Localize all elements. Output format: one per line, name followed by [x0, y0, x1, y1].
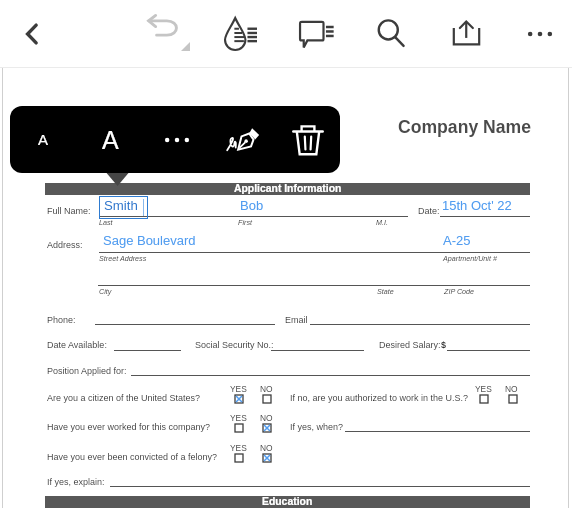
staticText: Street Address: [99, 254, 147, 262]
staticText: Apartment/Unit #: [443, 254, 497, 262]
button[interactable]: [235, 395, 243, 403]
button[interactable]: Share: [438, 0, 494, 68]
button[interactable]: [263, 454, 271, 462]
staticText: YES: [475, 384, 492, 393]
staticText: Desired Salary:: [379, 340, 441, 350]
button[interactable]: Delete: [275, 106, 340, 173]
staticText: Smith: [104, 198, 138, 213]
button[interactable]: [235, 454, 243, 462]
staticText: Have you ever worked for this company?: [47, 422, 211, 432]
staticText: $: [441, 340, 447, 350]
button[interactable]: A: [77, 106, 144, 173]
button[interactable]: Comment: [288, 0, 344, 68]
button[interactable]: Highlight: [213, 0, 269, 68]
button[interactable]: [509, 395, 517, 403]
staticText: Date:: [418, 206, 440, 216]
staticText: Education: [262, 496, 313, 508]
staticText: Company Name: [398, 117, 531, 137]
staticText: Position Applied for:: [47, 366, 127, 376]
staticText: Are you a citizen of the United States?: [47, 393, 201, 403]
staticText: Email: [285, 315, 308, 325]
button[interactable]: More options: [512, 0, 568, 68]
staticText: First: [238, 218, 252, 226]
staticText: Have you ever been convicted of a felony…: [47, 452, 218, 462]
staticText: NO: [505, 384, 518, 393]
staticText: YES: [230, 413, 247, 422]
staticText: M.I.: [376, 218, 388, 226]
staticText: Date Available:: [47, 340, 107, 350]
button[interactable]: [263, 424, 271, 432]
button[interactable]: [235, 424, 243, 432]
staticText: City: [99, 287, 112, 295]
staticText: 15th Oct' 22: [442, 198, 512, 213]
staticText: State: [377, 287, 394, 295]
staticText: If no, are you authorized to work in the…: [290, 393, 469, 403]
staticText: Address:: [47, 240, 83, 250]
button[interactable]: [99, 196, 148, 219]
staticText: Full Name:: [47, 206, 91, 216]
staticText: Last: [99, 218, 113, 226]
staticText: Bob: [240, 198, 264, 213]
button[interactable]: Undo: [141, 0, 197, 68]
staticText: If yes, when?: [290, 422, 344, 432]
button[interactable]: [480, 395, 488, 403]
button[interactable]: More: [144, 106, 210, 173]
staticText: YES: [230, 443, 247, 452]
button[interactable]: A: [10, 106, 77, 173]
staticText: Social Security No.:: [195, 340, 274, 350]
staticText: YES: [230, 384, 247, 393]
button[interactable]: Back: [6, 0, 58, 68]
staticText: ZIP Code: [444, 287, 475, 295]
staticText: A: [102, 126, 119, 154]
staticText: Phone:: [47, 315, 76, 325]
staticText: A-25: [443, 233, 471, 248]
button[interactable]: [263, 395, 271, 403]
staticText: NO: [260, 443, 273, 452]
staticText: NO: [260, 413, 273, 422]
staticText: Sage Boulevard: [103, 233, 196, 248]
staticText: Applicant Information: [234, 183, 342, 195]
button[interactable]: Search: [363, 0, 419, 68]
staticText: A: [38, 131, 49, 148]
staticText: If yes, explain:: [47, 477, 105, 487]
staticText: NO: [260, 384, 273, 393]
button[interactable]: Signature: [210, 106, 275, 173]
